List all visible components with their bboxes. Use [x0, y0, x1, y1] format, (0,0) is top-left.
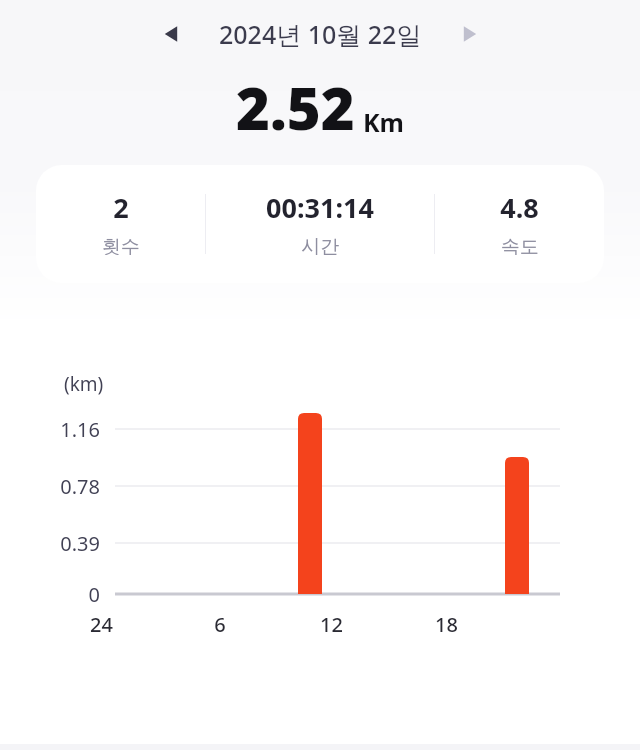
staticText: 12: [320, 611, 343, 638]
staticText: 4.8: [500, 189, 539, 226]
staticText: 6: [214, 611, 226, 638]
staticText: 18: [435, 611, 458, 638]
staticText: 2024년 10월 22일: [219, 17, 422, 51]
staticText: 2: [113, 189, 129, 226]
staticText: 횟수: [102, 235, 140, 259]
staticText: 0.39: [60, 530, 100, 557]
button[interactable]: Previous day: [151, 14, 191, 54]
staticText: 속도: [501, 235, 539, 259]
staticText: 1.16: [60, 416, 100, 443]
staticText: 시간: [301, 235, 339, 259]
staticText: 2.52: [236, 68, 355, 147]
staticText: 00:31:14: [266, 189, 374, 226]
staticText: 0: [88, 581, 100, 608]
staticText: 24: [90, 611, 113, 638]
staticText: 0.78: [60, 473, 100, 500]
button[interactable]: 2: [36, 165, 604, 283]
staticText: (km): [64, 371, 104, 397]
staticText: Km: [363, 105, 404, 139]
button[interactable]: Next day: [450, 14, 490, 54]
